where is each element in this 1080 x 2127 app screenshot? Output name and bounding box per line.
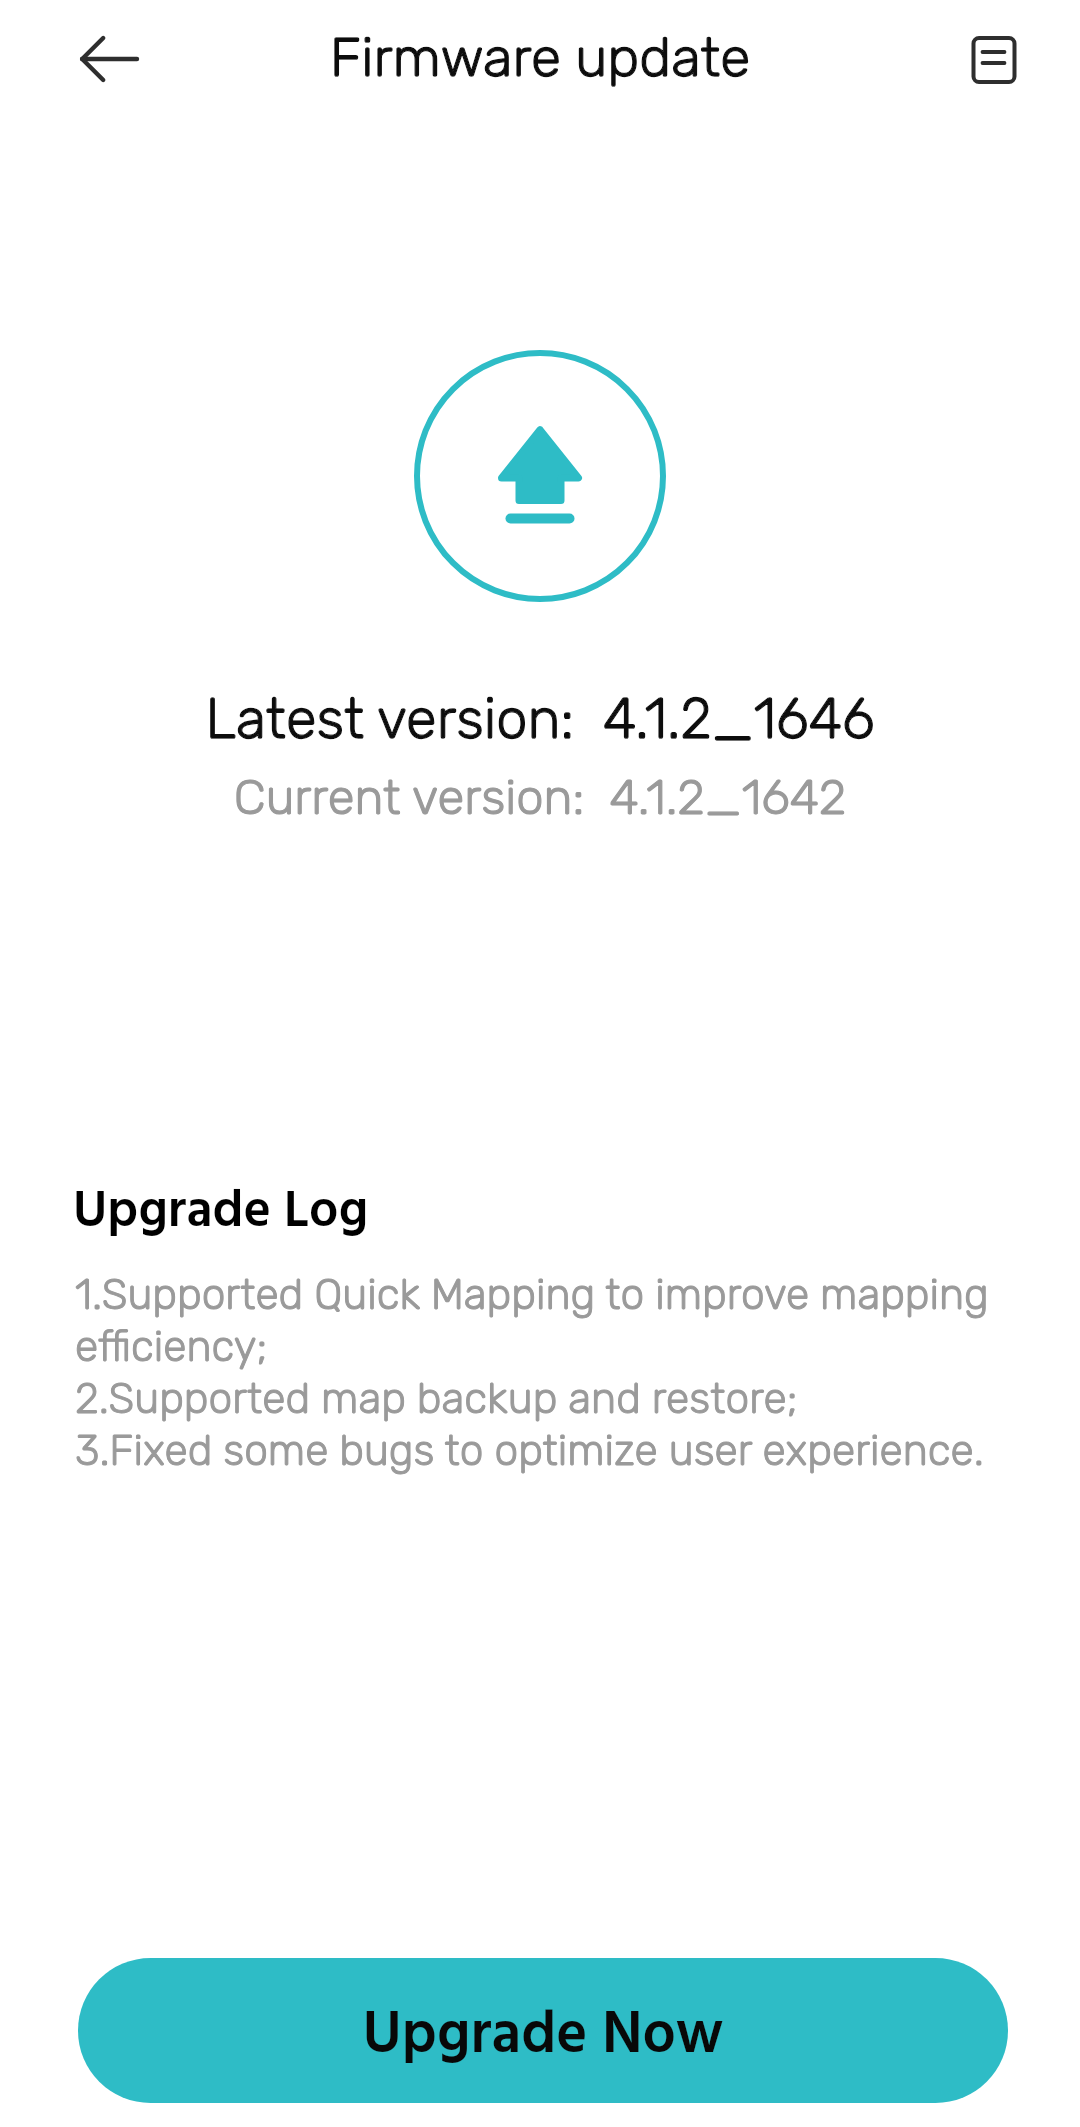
staticText: Latest version: 4.1.2_1646 [0, 686, 1080, 752]
staticText: Current version: 4.1.2_1642 [0, 768, 1080, 826]
staticText: Current version: 4.1.2_1642 [0, 768, 1080, 826]
button[interactable]: Release notes [944, 10, 1044, 110]
staticText: 1.Supported Quick Mapping to improve map… [75, 1269, 1025, 1475]
staticText: Upgrade Log [73, 1171, 493, 1254]
staticText: Latest version: 4.1.2_1646 [0, 686, 1080, 752]
staticText: Upgrade Now [78, 1990, 1008, 2084]
other: Firmware upload [414, 350, 666, 602]
staticText: 1.Supported Quick Mapping to improve map… [75, 1269, 1025, 1475]
staticText: Firmware update [0, 25, 1080, 90]
button[interactable]: Upgrade Now [78, 1958, 1008, 2103]
button[interactable]: Back [59, 9, 159, 109]
staticText: Firmware update [0, 25, 1080, 90]
